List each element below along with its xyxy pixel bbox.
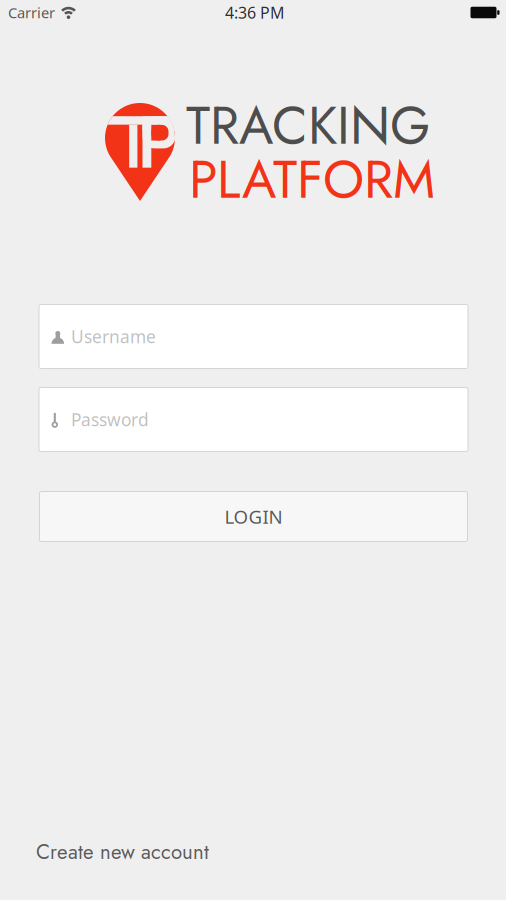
staticText: Carrier [8, 3, 55, 22]
staticText: PLATFORM [189, 142, 435, 217]
staticText: Create new account [36, 837, 209, 867]
button[interactable]: Username [39, 304, 468, 368]
button[interactable]: Password [39, 387, 468, 451]
button[interactable]: Create new account [36, 832, 236, 872]
staticText: TRACKING [186, 88, 430, 163]
staticText: 4:36 PM [225, 2, 285, 23]
staticText: LOGIN [224, 504, 282, 529]
button[interactable]: LOGIN [39, 491, 467, 541]
staticText: Username [71, 325, 156, 348]
staticText: Password [71, 408, 149, 431]
